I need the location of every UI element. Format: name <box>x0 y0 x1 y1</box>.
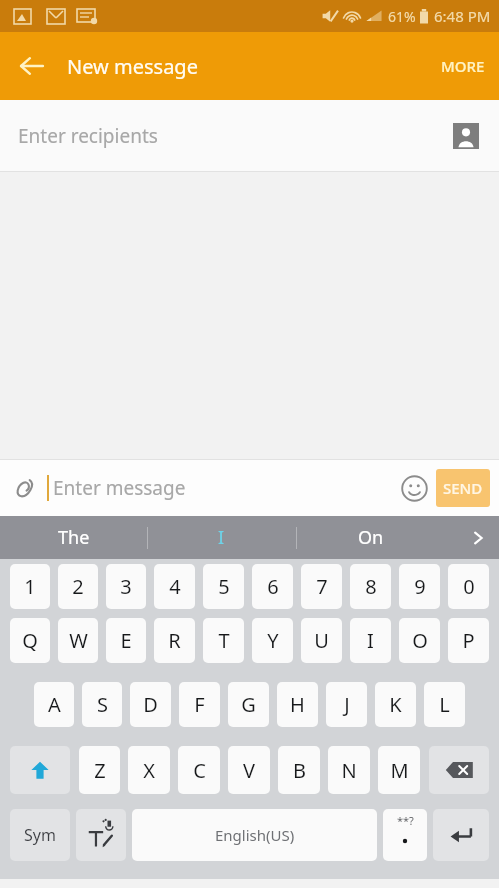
button[interactable]: R <box>154 618 195 663</box>
staticText: MORE <box>441 56 485 76</box>
button[interactable]: Backspace <box>429 746 489 794</box>
staticText: **? <box>397 813 414 828</box>
staticText: F <box>194 691 205 718</box>
button[interactable]: 1 <box>10 564 50 609</box>
staticText: O <box>412 627 428 654</box>
button[interactable]: SEND <box>436 469 490 507</box>
staticText: Sym <box>24 824 56 846</box>
staticText: X <box>143 757 155 784</box>
staticText: W <box>69 627 88 654</box>
button[interactable]: V <box>228 746 270 794</box>
staticText: I <box>218 525 225 550</box>
button[interactable]: Enter <box>433 809 489 861</box>
button[interactable]: U <box>301 618 342 663</box>
staticText: 8 <box>365 573 377 600</box>
button[interactable]: E <box>106 618 146 663</box>
staticText: T <box>218 627 230 654</box>
button[interactable]: I <box>350 618 391 663</box>
button[interactable]: The <box>0 516 147 559</box>
staticText: SEND <box>443 478 483 498</box>
button[interactable]: 7 <box>301 564 342 609</box>
button[interactable]: A <box>34 682 74 727</box>
button[interactable]: H <box>277 682 318 727</box>
staticText: H <box>290 691 305 718</box>
button[interactable]: 6 <box>252 564 293 609</box>
staticText: 61% <box>388 7 416 26</box>
button[interactable]: J <box>326 682 367 727</box>
button[interactable]: C <box>178 746 220 794</box>
staticText: P <box>462 627 475 654</box>
button[interactable]: Y <box>252 618 293 663</box>
button[interactable]: 2 <box>58 564 98 609</box>
button[interactable]: Handwriting and voice input <box>76 809 126 861</box>
staticText: 6:48 PM <box>434 6 491 26</box>
button[interactable]: Navigate up <box>10 44 54 88</box>
button[interactable]: D <box>130 682 171 727</box>
staticText: 0 <box>463 573 475 600</box>
button[interactable]: 5 <box>203 564 244 609</box>
staticText: 3 <box>120 573 132 600</box>
staticText: I <box>367 627 374 654</box>
staticText: D <box>143 691 158 718</box>
staticText: Enter recipients <box>18 123 158 149</box>
button[interactable]: Add recipient from contacts <box>449 119 483 153</box>
button[interactable]: X <box>128 746 170 794</box>
button[interactable]: T <box>203 618 244 663</box>
button[interactable]: Z <box>79 746 120 794</box>
staticText: Y <box>267 627 279 654</box>
button[interactable]: W <box>58 618 98 663</box>
button[interactable]: Insert emoticon <box>395 469 433 507</box>
staticText: G <box>241 691 256 718</box>
staticText: S <box>97 691 108 718</box>
staticText: New message <box>67 53 198 80</box>
button[interactable]: K <box>375 682 416 727</box>
button[interactable]: Attach file <box>6 469 44 507</box>
button[interactable]: Enter recipients <box>0 100 499 171</box>
staticText: B <box>293 757 306 784</box>
staticText: Enter message <box>53 475 186 501</box>
button[interactable]: O <box>399 618 440 663</box>
button[interactable]: MORE <box>427 44 499 88</box>
staticText: M <box>390 757 409 784</box>
staticText: English(US) <box>215 825 295 845</box>
button[interactable]: 4 <box>154 564 195 609</box>
button[interactable]: M <box>378 746 420 794</box>
staticText: C <box>193 757 206 784</box>
staticText: K <box>389 691 402 718</box>
button[interactable]: F <box>179 682 220 727</box>
button[interactable]: 8 <box>350 564 391 609</box>
staticText: The <box>58 525 90 550</box>
button[interactable]: 9 <box>399 564 440 609</box>
staticText: Z <box>94 757 106 784</box>
staticText: N <box>341 757 357 784</box>
button[interactable]: Sym <box>10 809 70 861</box>
staticText: On <box>358 525 384 550</box>
staticText: 5 <box>218 573 230 600</box>
staticText: 6 <box>267 573 279 600</box>
button[interactable]: Shift <box>10 746 70 794</box>
staticText: L <box>439 691 450 718</box>
button[interactable]: Period <box>383 809 427 861</box>
staticText: 1 <box>24 573 36 600</box>
button[interactable]: G <box>228 682 269 727</box>
staticText: A <box>48 691 61 718</box>
staticText: U <box>314 627 329 654</box>
button[interactable]: B <box>278 746 320 794</box>
button[interactable]: N <box>328 746 370 794</box>
button[interactable]: Q <box>10 618 50 663</box>
button[interactable]: S <box>82 682 122 727</box>
button[interactable]: 3 <box>106 564 146 609</box>
button[interactable]: I <box>147 516 296 559</box>
staticText: 7 <box>316 573 328 600</box>
staticText: R <box>168 627 181 654</box>
staticText: J <box>344 691 350 718</box>
staticText: Q <box>22 627 38 654</box>
button[interactable]: More suggestions <box>456 516 499 559</box>
staticText: E <box>120 627 132 654</box>
button[interactable]: On <box>296 516 445 559</box>
button[interactable]: 0 <box>448 564 489 609</box>
staticText: V <box>243 757 255 784</box>
button[interactable]: L <box>424 682 465 727</box>
button[interactable]: English(US) <box>132 809 377 861</box>
button[interactable]: P <box>448 618 489 663</box>
